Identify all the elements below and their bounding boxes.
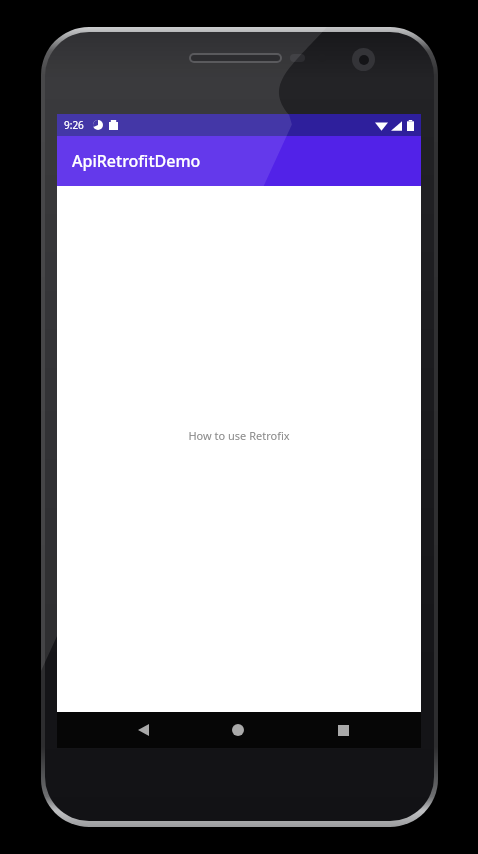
button[interactable]: Recent apps [321, 712, 365, 748]
staticText: How to use Retrofix [188, 428, 290, 443]
staticText: ApiRetrofitDemo [72, 150, 201, 172]
staticText: 9:26 [64, 118, 84, 132]
button[interactable]: Home [216, 712, 260, 748]
button[interactable]: Back [121, 712, 165, 748]
